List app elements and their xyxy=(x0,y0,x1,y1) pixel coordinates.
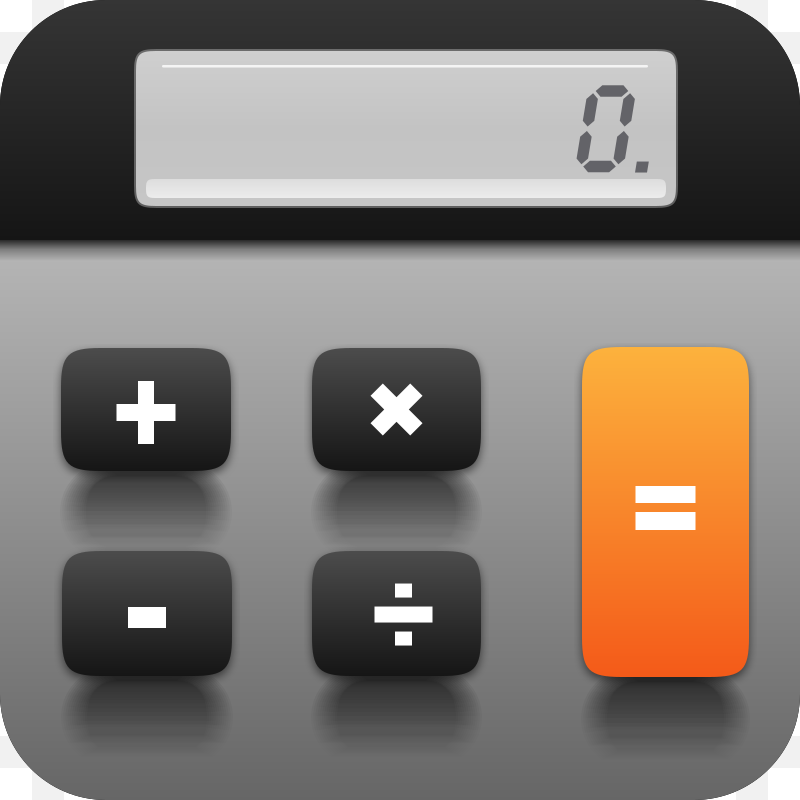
button[interactable]: Multiply xyxy=(312,348,481,471)
button[interactable]: Subtract xyxy=(62,551,232,676)
button[interactable]: Divide xyxy=(312,551,481,676)
button[interactable]: Add xyxy=(61,348,231,471)
button[interactable]: Equals xyxy=(582,347,749,677)
